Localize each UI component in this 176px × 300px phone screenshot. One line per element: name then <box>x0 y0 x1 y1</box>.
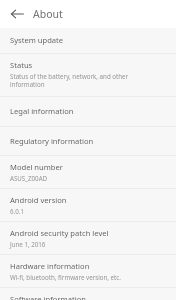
staticText: Software information <box>10 294 86 300</box>
staticText: Regulatory information <box>10 136 94 146</box>
staticText: Hardware information <box>10 261 90 271</box>
staticText: Status <box>10 60 33 70</box>
button[interactable]: Legal information <box>0 97 176 126</box>
staticText: Legal information <box>10 106 74 116</box>
button[interactable]: Back <box>6 3 28 25</box>
staticText: Android security patch level <box>10 228 109 238</box>
staticText: 6.0.1 <box>10 207 24 215</box>
button[interactable]: Hardware information <box>0 255 176 287</box>
button[interactable]: Status <box>0 54 176 96</box>
button[interactable]: Android security patch level <box>0 222 176 254</box>
staticText: Android version <box>10 195 67 205</box>
staticText: ASUS_Z00AD <box>10 174 48 182</box>
staticText: Status of the battery, network, and othe… <box>10 72 129 80</box>
button[interactable]: Regulatory information <box>0 127 176 155</box>
button[interactable]: Model number <box>0 156 176 188</box>
staticText: information <box>10 80 45 88</box>
button[interactable]: System update <box>0 28 176 53</box>
staticText: Wi-fi, bluetooth, firmware version, etc. <box>10 273 121 281</box>
staticText: June 1, 2016 <box>10 240 46 248</box>
staticText: System update <box>10 35 64 45</box>
button[interactable]: Android version <box>0 189 176 221</box>
button[interactable]: Software information <box>0 288 176 300</box>
staticText: Model number <box>10 162 63 172</box>
staticText: About <box>33 7 63 21</box>
